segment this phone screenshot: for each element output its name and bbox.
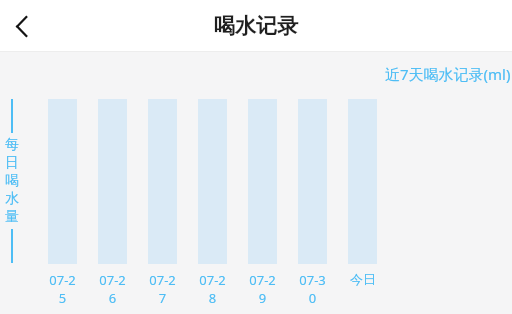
- button[interactable]: 今日: [348, 99, 377, 287]
- staticText: 每: [5, 136, 19, 154]
- staticText: 日: [5, 154, 19, 172]
- staticText: 07-28: [198, 271, 227, 307]
- staticText: 07-27: [148, 271, 177, 307]
- staticText: 07-30: [298, 271, 327, 307]
- button[interactable]: 07-26: [98, 99, 127, 307]
- staticText: 喝水记录: [214, 13, 298, 39]
- button[interactable]: 07-30: [298, 99, 327, 307]
- staticText: 喝: [5, 172, 19, 190]
- button[interactable]: 07-28: [198, 99, 227, 307]
- button[interactable]: 07-27: [148, 99, 177, 307]
- button[interactable]: 07-25: [48, 99, 77, 307]
- staticText: 07-26: [98, 271, 127, 307]
- staticText: 量: [5, 208, 19, 226]
- button[interactable]: Back: [0, 4, 44, 48]
- staticText: 水: [5, 190, 19, 208]
- staticText: 今日: [350, 271, 376, 287]
- staticText: 近7天喝水记录(ml): [385, 64, 511, 84]
- button[interactable]: 07-29: [248, 99, 277, 307]
- staticText: 07-29: [248, 271, 277, 307]
- staticText: 07-25: [48, 271, 77, 307]
